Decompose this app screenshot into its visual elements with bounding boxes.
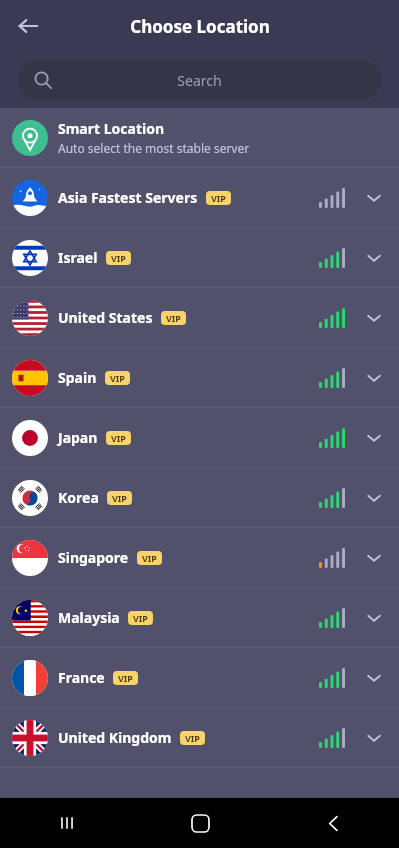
staticText: VIP [133,612,148,624]
button[interactable]: Malaysia [0,588,399,647]
staticText: Korea [58,488,99,507]
button[interactable]: Expand United Kingdom [361,725,387,751]
button[interactable]: Asia Fastest Servers [0,168,399,227]
button[interactable]: Recents [45,801,89,845]
staticText: VIP [211,192,226,204]
button[interactable]: Expand Korea [361,485,387,511]
button[interactable]: Expand Singapore [361,545,387,571]
button[interactable]: France [0,648,399,707]
staticText: VIP [110,372,125,384]
staticText: Singapore [58,548,129,567]
button[interactable]: Japan [0,408,399,467]
button[interactable]: Search [18,60,381,100]
button[interactable]: Expand Spain [361,365,387,391]
button[interactable]: Expand Israel [361,245,387,271]
staticText: VIP [166,312,181,324]
button[interactable]: Expand Malaysia [361,605,387,631]
button[interactable]: United Kingdom [0,708,399,767]
button[interactable]: Korea [0,468,399,527]
staticText: VIP [185,732,200,744]
staticText: VIP [118,672,133,684]
button[interactable]: Singapore [0,528,399,587]
staticText: VIP [111,432,126,444]
staticText: United States [58,308,153,327]
button[interactable]: Back [311,801,355,845]
staticText: Asia Fastest Servers [58,188,198,207]
staticText: Auto select the most stable server [58,140,250,156]
staticText: United Kingdom [58,728,172,747]
button[interactable]: Expand France [361,665,387,691]
staticText: Search [177,71,222,90]
button[interactable]: Smart Location [0,108,399,167]
button[interactable]: United States [0,288,399,347]
button[interactable]: Back [8,6,48,46]
button[interactable]: Expand United States [361,305,387,331]
staticText: Malaysia [58,608,120,627]
button[interactable]: Expand Asia Fastest Servers [361,185,387,211]
staticText: VIP [142,552,157,564]
button[interactable]: Home [178,801,222,845]
staticText: VIP [112,492,127,504]
staticText: Choose Location [130,15,270,38]
staticText: Spain [58,368,97,387]
staticText: Japan [58,428,98,447]
staticText: VIP [111,252,126,264]
staticText: Smart Location [58,119,165,138]
staticText: France [58,668,105,687]
button[interactable]: Spain [0,348,399,407]
staticText: Israel [58,248,98,267]
button[interactable]: Israel [0,228,399,287]
button[interactable]: Expand Japan [361,425,387,451]
